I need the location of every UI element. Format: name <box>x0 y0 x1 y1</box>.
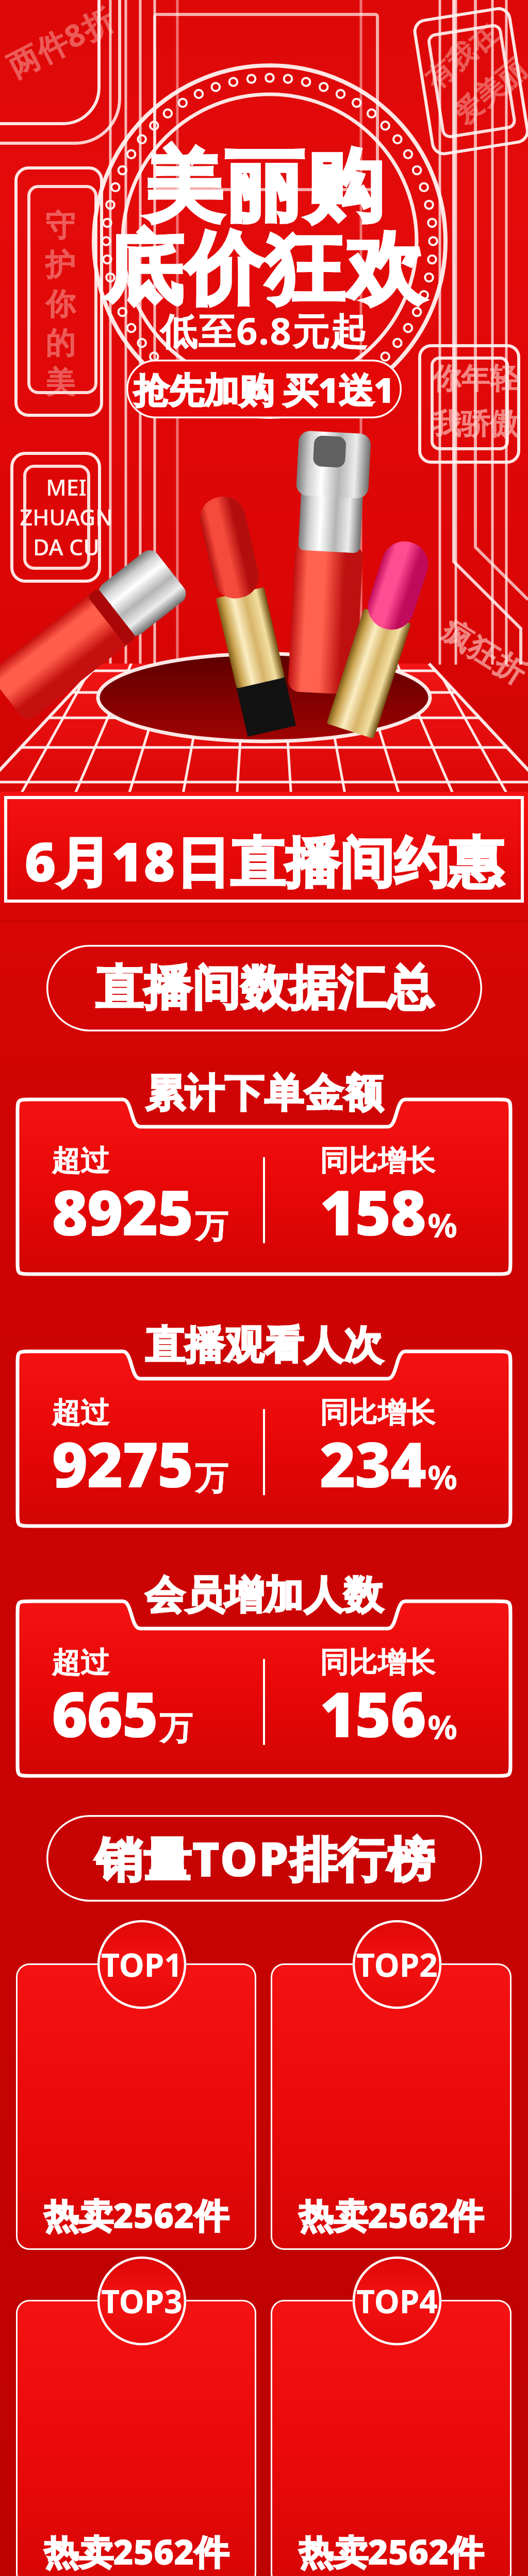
staticText: 665 <box>52 1671 157 1755</box>
staticText: % <box>427 1704 457 1749</box>
staticText: 万 <box>195 1206 228 1247</box>
staticText: 超过 <box>52 1395 109 1431</box>
button[interactable]: 销量TOP排行榜 <box>46 1815 482 1902</box>
staticText: 热卖2562件 <box>44 2528 229 2575</box>
staticText: 同比增长 <box>320 1645 435 1681</box>
staticText: % <box>427 1202 457 1247</box>
staticText: 9275 <box>52 1421 193 1505</box>
staticText: 直播间数据汇总 <box>95 958 434 1018</box>
staticText: 你年轻 我骄傲 <box>432 361 519 442</box>
staticText: 156 <box>320 1671 425 1755</box>
staticText: 疯狂折 <box>434 612 528 693</box>
button[interactable]: 热卖2562件 <box>16 1963 256 2250</box>
button[interactable]: 直播间数据汇总 <box>46 945 482 1031</box>
staticText: 有我在 爱美丽 <box>418 17 528 132</box>
button[interactable]: 6月18日直播间约惠 <box>0 792 528 921</box>
staticText: TOP1 <box>101 1943 183 1986</box>
staticText: MEI ZHUAGN DA CU <box>20 472 113 562</box>
staticText: 万 <box>195 1458 228 1499</box>
staticText: 8925 <box>52 1170 193 1253</box>
button[interactable]: 热卖2562件 <box>271 2300 511 2576</box>
button[interactable]: 抢先加购 买1送1 <box>126 360 402 418</box>
staticText: 158 <box>320 1170 425 1253</box>
staticText: 万 <box>159 1707 192 1749</box>
staticText: TOP4 <box>356 2279 438 2323</box>
staticText: 累计下单金额 <box>145 1069 383 1118</box>
staticText: 抢先加购 买1送1 <box>134 365 394 413</box>
staticText: 同比增长 <box>320 1395 435 1431</box>
staticText: 热卖2562件 <box>44 2191 229 2239</box>
staticText: 热卖2562件 <box>299 2191 484 2239</box>
staticText: 底价狂欢 <box>103 221 425 319</box>
button[interactable]: 热卖2562件 <box>16 2300 256 2576</box>
staticText: 会员增加人数 <box>145 1571 383 1620</box>
staticText: TOP2 <box>356 1943 438 1986</box>
staticText: 同比增长 <box>320 1143 435 1179</box>
staticText: % <box>427 1454 457 1499</box>
staticText: 美丽购 <box>143 138 385 236</box>
staticText: 两件8折 <box>0 0 121 87</box>
staticText: 守 护 你 的 美 <box>45 207 75 401</box>
staticText: 6月18日直播间约惠 <box>24 824 504 897</box>
staticText: 低至6.8元起 <box>160 305 369 355</box>
staticText: TOP3 <box>101 2279 183 2323</box>
staticText: 热卖2562件 <box>299 2528 484 2575</box>
staticText: 超过 <box>52 1645 109 1681</box>
staticText: 直播观看人次 <box>145 1321 383 1370</box>
staticText: 234 <box>320 1421 425 1505</box>
staticText: 超过 <box>52 1143 109 1179</box>
button[interactable]: 热卖2562件 <box>271 1963 511 2250</box>
staticText: 销量TOP排行榜 <box>94 1826 435 1891</box>
